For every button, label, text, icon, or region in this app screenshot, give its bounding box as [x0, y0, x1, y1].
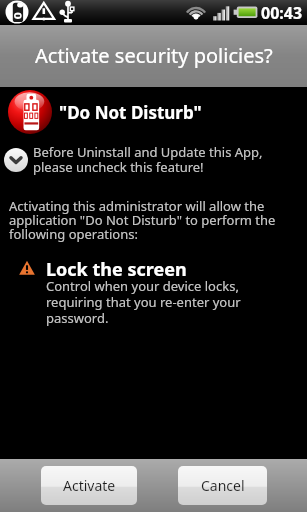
- staticText: "Do Not Disturb": [59, 101, 202, 124]
- staticText: Activate: [63, 476, 116, 495]
- staticText: Activating this administrator will allow…: [9, 197, 279, 243]
- staticText: Before Uninstall and Update this App, pl…: [33, 143, 263, 176]
- staticText: 00:43: [261, 2, 303, 24]
- staticText: Cancel: [201, 476, 245, 495]
- staticText: Control when your device locks, requirin…: [46, 277, 267, 326]
- staticText: Lock the screen: [46, 257, 187, 282]
- button[interactable]: Expand details: [4, 148, 28, 172]
- button[interactable]: Activate: [41, 466, 137, 505]
- staticText: Activate security policies?: [35, 42, 273, 69]
- button[interactable]: Cancel: [178, 466, 267, 505]
